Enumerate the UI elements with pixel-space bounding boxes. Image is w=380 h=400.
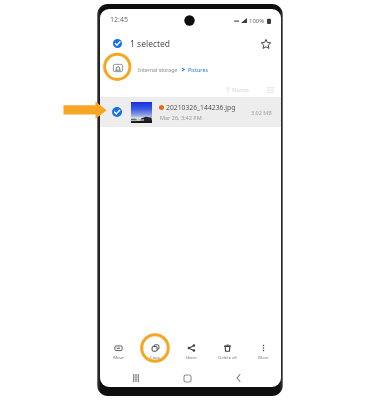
button[interactable]: View as xyxy=(265,85,275,95)
staticText: Delete all xyxy=(218,355,237,361)
button[interactable]: Copy xyxy=(137,342,173,363)
button[interactable]: Delete all xyxy=(209,342,245,363)
staticText: Share xyxy=(185,355,197,361)
button[interactable]: 1 selected xyxy=(130,38,171,50)
staticText: Move xyxy=(113,355,124,361)
button[interactable]: Back xyxy=(230,370,246,386)
button[interactable]: Pictures xyxy=(188,66,208,73)
button[interactable]: Deselect all xyxy=(110,36,124,50)
button[interactable]: Move xyxy=(100,342,137,363)
staticText: 100% xyxy=(249,17,265,25)
button[interactable]: Internal storage root xyxy=(111,61,124,74)
button[interactable]: 20210326_144236.jpg xyxy=(100,97,281,127)
button[interactable]: Share xyxy=(173,342,209,363)
staticText: Mar 26, 3:42 PM xyxy=(160,114,202,121)
staticText: 20210326_144236.jpg xyxy=(166,103,236,112)
button[interactable]: Add to favourites xyxy=(258,36,274,52)
button[interactable]: Name xyxy=(226,86,249,94)
staticText: 12:45 xyxy=(110,15,128,25)
button[interactable]: Recent apps xyxy=(128,370,144,386)
button[interactable]: Home xyxy=(179,370,195,386)
staticText: 3.02 MB xyxy=(251,109,272,116)
button[interactable]: Internal storage xyxy=(138,66,178,73)
staticText: Name xyxy=(232,86,249,94)
staticText: More xyxy=(258,355,269,361)
button[interactable]: More xyxy=(245,342,281,363)
staticText: Copy xyxy=(150,355,160,361)
